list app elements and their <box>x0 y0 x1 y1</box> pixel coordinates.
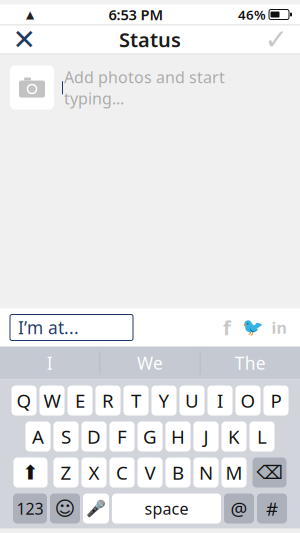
staticText: 6:53 PM <box>108 5 163 24</box>
staticText: P <box>270 388 281 413</box>
button[interactable]: X <box>81 457 106 487</box>
staticText: Q <box>16 388 31 413</box>
staticText: H <box>171 424 185 449</box>
staticText: ⬆ <box>22 461 39 484</box>
button[interactable]: Share to Facebook <box>214 314 240 340</box>
button[interactable]: Post <box>252 25 300 53</box>
button[interactable]: Emoji <box>50 493 80 523</box>
button[interactable]: Y <box>151 385 176 415</box>
staticText: Add photos and start typing... <box>64 66 225 109</box>
button[interactable]: I <box>207 385 232 415</box>
button[interactable]: I’m at... <box>10 314 133 340</box>
staticText: I’m at... <box>18 316 79 339</box>
staticText: W <box>43 388 60 413</box>
button[interactable]: Dictate <box>83 493 109 523</box>
button[interactable]: S <box>53 421 78 451</box>
button[interactable]: K <box>221 421 246 451</box>
button[interactable]: Hash <box>257 493 287 523</box>
button[interactable]: N <box>193 457 218 487</box>
staticText: R <box>102 388 114 413</box>
staticText: N <box>199 460 213 485</box>
staticText: T <box>131 388 141 413</box>
staticText: ✕ <box>12 24 35 55</box>
staticText: I <box>47 351 53 374</box>
staticText: V <box>144 460 155 485</box>
button[interactable]: Numbers <box>13 493 47 523</box>
staticText: @ <box>230 496 247 521</box>
button[interactable]: I <box>0 346 99 379</box>
staticText: Status <box>119 26 181 53</box>
staticText: The <box>235 351 266 374</box>
staticText: in <box>271 317 286 338</box>
button[interactable]: Shift <box>13 457 47 487</box>
staticText: O <box>240 388 255 413</box>
button[interactable]: C <box>109 457 134 487</box>
staticText: 46% <box>238 6 266 23</box>
staticText: G <box>143 424 157 449</box>
button[interactable]: Z <box>53 457 78 487</box>
button[interactable]: J <box>193 421 218 451</box>
button[interactable]: F <box>109 421 134 451</box>
button[interactable]: M <box>221 457 246 487</box>
staticText: D <box>87 424 101 449</box>
staticText: J <box>203 424 208 449</box>
button[interactable]: Close <box>0 25 48 53</box>
staticText: # <box>266 496 278 521</box>
staticText: ⌫ <box>256 462 282 483</box>
button[interactable]: Share to LinkedIn <box>266 314 292 340</box>
button[interactable]: P <box>263 385 288 415</box>
staticText: U <box>185 388 199 413</box>
button[interactable]: E <box>67 385 92 415</box>
staticText: Y <box>158 388 169 413</box>
button[interactable]: Delete <box>252 457 286 487</box>
button[interactable]: H <box>165 421 190 451</box>
staticText: L <box>257 424 267 449</box>
button[interactable]: R <box>95 385 120 415</box>
button[interactable]: W <box>39 385 64 415</box>
staticText: X <box>88 460 99 485</box>
staticText: S <box>61 424 71 449</box>
staticText: F <box>117 424 127 449</box>
button[interactable]: O <box>235 385 260 415</box>
button[interactable]: At sign <box>224 493 254 523</box>
staticText: space <box>144 498 188 519</box>
button[interactable]: V <box>137 457 162 487</box>
button[interactable]: Add photos <box>10 65 54 109</box>
staticText: We <box>137 351 163 374</box>
staticText: Z <box>60 460 71 485</box>
staticText: ☺ <box>54 497 75 520</box>
button[interactable]: U <box>179 385 204 415</box>
button[interactable]: B <box>165 457 190 487</box>
staticText: ▲ <box>26 8 34 20</box>
staticText: f <box>223 314 231 341</box>
staticText: 🎤 <box>86 499 106 518</box>
button[interactable]: The <box>201 346 300 379</box>
staticText: ✓ <box>264 24 287 55</box>
button[interactable]: space <box>112 493 221 523</box>
button[interactable]: L <box>249 421 274 451</box>
staticText: A <box>32 424 44 449</box>
button[interactable]: Q <box>11 385 36 415</box>
button[interactable]: D <box>81 421 106 451</box>
staticText: 123 <box>16 498 43 519</box>
button[interactable]: We <box>100 346 200 379</box>
button[interactable]: G <box>137 421 162 451</box>
staticText: E <box>75 388 85 413</box>
staticText: I <box>217 388 223 413</box>
staticText: 🐦 <box>242 318 264 337</box>
staticText: B <box>172 460 184 485</box>
button[interactable]: A <box>25 421 50 451</box>
staticText: C <box>116 460 128 485</box>
staticText: M <box>225 460 242 485</box>
button[interactable]: Share to Twitter <box>240 314 266 340</box>
staticText: K <box>228 424 240 449</box>
button[interactable]: T <box>123 385 148 415</box>
